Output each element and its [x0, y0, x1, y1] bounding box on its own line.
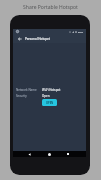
staticText: Share Portable Hotspot: [0, 4, 101, 11]
staticText: Network Name: [16, 88, 37, 92]
staticText: OPEN: [46, 101, 54, 105]
staticText: Wi-Fi Hotspot: [42, 88, 61, 92]
button[interactable]: Back: [15, 34, 24, 43]
button[interactable]: Recents: [65, 151, 71, 157]
button[interactable]: Home: [46, 151, 52, 157]
staticText: Personal Hotspot: [25, 37, 50, 41]
button[interactable]: OPEN: [42, 99, 57, 106]
staticText: Open: [42, 94, 50, 98]
staticText: Security: [16, 94, 27, 98]
staticText: 8:44: [78, 30, 83, 33]
button[interactable]: Back: [26, 151, 32, 157]
